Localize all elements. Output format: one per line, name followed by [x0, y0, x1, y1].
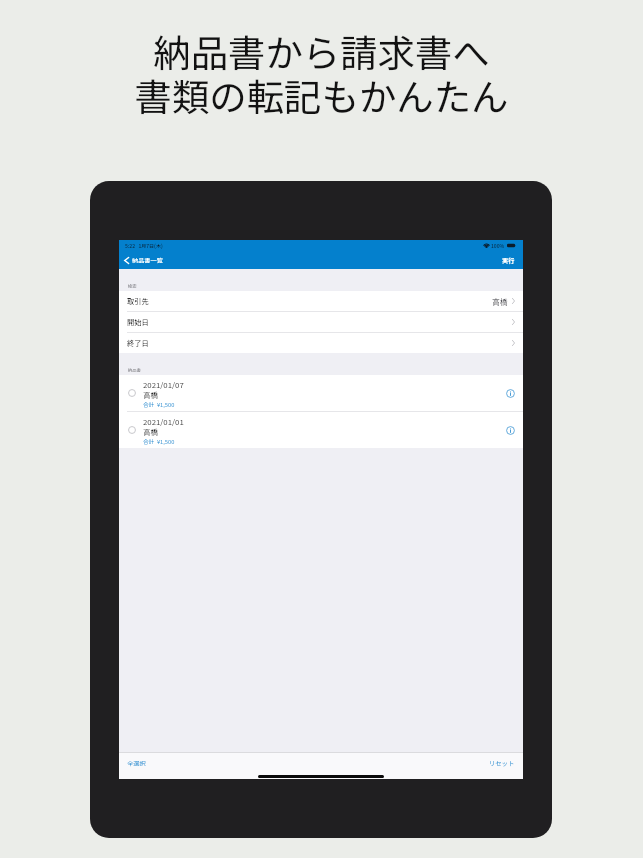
staticText: 実行: [502, 256, 515, 265]
staticText: 終了日: [127, 338, 149, 348]
button[interactable]: Details: [506, 426, 515, 435]
button[interactable]: 全選択: [127, 757, 146, 770]
button[interactable]: 取引先: [119, 291, 523, 311]
staticText: 高橋: [492, 296, 508, 307]
staticText: リセット: [489, 759, 515, 768]
staticText: 2021/01/07: [143, 379, 184, 389]
staticText: 合計 ¥1,500: [143, 400, 175, 408]
staticText: 開始日: [127, 317, 149, 327]
button[interactable]: Back: [122, 254, 165, 267]
staticText: 合計 ¥1,500: [143, 437, 175, 445]
button[interactable]: リセット: [489, 757, 515, 770]
staticText: 高橋: [143, 426, 158, 436]
staticText: 検索: [128, 283, 137, 289]
staticText: 5:22 1月7日(木): [125, 242, 163, 249]
button[interactable]: 2021/01/07: [119, 375, 523, 411]
button[interactable]: 開始日: [119, 312, 523, 332]
staticText: 取引先: [127, 296, 149, 306]
button[interactable]: Details: [506, 389, 515, 398]
staticText: 納品書から請求書へ 書類の転記もかんたん: [0, 24, 643, 122]
button[interactable]: 終了日: [119, 333, 523, 353]
button[interactable]: 実行: [500, 254, 517, 267]
staticText: 納品書一覧: [132, 256, 163, 265]
staticText: 納品書: [128, 367, 141, 373]
staticText: 100%: [491, 242, 505, 249]
staticText: 2021/01/01: [143, 416, 184, 426]
button[interactable]: 2021/01/01: [119, 412, 523, 448]
staticText: 高橋: [143, 389, 158, 399]
staticText: 全選択: [127, 759, 146, 768]
